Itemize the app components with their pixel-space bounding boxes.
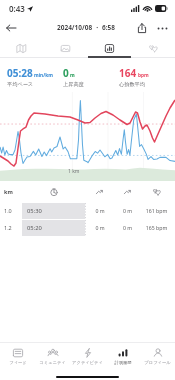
staticText: 0:43 [9, 3, 25, 14]
staticText: bpm [138, 72, 149, 79]
staticText: 1 km [68, 168, 80, 175]
staticText: km [4, 188, 22, 195]
staticText: min/km [34, 72, 53, 79]
staticText: プロフィール [144, 360, 171, 365]
staticText: 0 [63, 66, 69, 80]
staticText: 161 bpm [141, 207, 172, 214]
button[interactable]: 計測履歴 [105, 343, 140, 369]
staticText: 164 [119, 66, 137, 80]
staticText: 1.0 [4, 207, 22, 214]
button[interactable]: Back [1, 18, 21, 38]
staticText: コミュニティ [39, 360, 66, 365]
staticText: 0 m [114, 224, 141, 231]
staticText: フィード [9, 360, 27, 365]
button[interactable]: アクティビティ [70, 343, 105, 369]
staticText: 平均ペース [7, 81, 34, 88]
staticText: 0 m [86, 207, 114, 214]
button[interactable]: Photos [43, 38, 87, 58]
button[interactable]: 1.0 [4, 202, 172, 219]
staticText: 計測履歴 [114, 360, 132, 365]
button[interactable]: Charts [87, 38, 131, 58]
staticText: 0 m [86, 224, 114, 231]
button[interactable]: Share [132, 18, 152, 38]
staticText: 165 bpm [141, 224, 172, 231]
staticText: アクティビティ [72, 360, 103, 365]
staticText: 0 m [114, 207, 141, 214]
button[interactable]: Map [0, 38, 43, 58]
staticText: 05:30 [27, 207, 42, 215]
staticText: 心拍数平均 [119, 81, 145, 88]
staticText: 05:28 [7, 66, 33, 80]
button[interactable]: Heart rate [131, 38, 175, 58]
button[interactable]: プロフィール [140, 343, 175, 369]
staticText: 上昇高度 [63, 81, 84, 88]
button[interactable]: 1.2 [4, 219, 172, 236]
staticText: 1.2 [4, 224, 22, 231]
staticText: 05:20 [27, 224, 42, 232]
button[interactable]: More options [152, 18, 172, 38]
button[interactable]: コミュニティ [35, 343, 70, 369]
button[interactable]: フィード [0, 343, 35, 369]
staticText: m [70, 72, 75, 79]
staticText: 2024/10/08 ・ 6:58 [57, 23, 115, 32]
